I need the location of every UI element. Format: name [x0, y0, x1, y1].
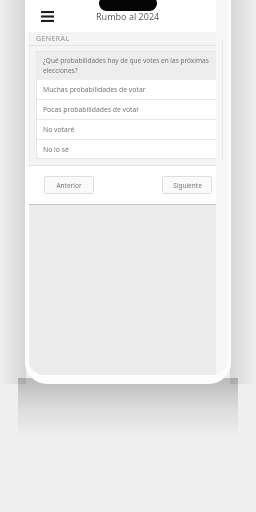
staticText: No votaré — [43, 125, 75, 134]
button[interactable]: Muchas probabilidades de votar — [36, 80, 218, 99]
staticText: Anterior — [56, 181, 82, 190]
button[interactable]: Pocas probabilidades de votar — [36, 100, 218, 119]
staticText: GENERAL — [36, 34, 70, 44]
staticText: Pocas probabilidades de votar — [43, 105, 140, 114]
staticText: Rumbo al 2024 — [96, 10, 160, 22]
button[interactable]: Abrir menú — [36, 5, 58, 27]
button[interactable]: No votaré — [36, 120, 218, 139]
button[interactable]: Siguiente — [162, 176, 212, 194]
button[interactable]: Anterior — [44, 176, 94, 194]
staticText: Muchas probabilidades de votar — [43, 85, 146, 94]
staticText: No lo sé — [43, 145, 69, 154]
staticText: Siguiente — [173, 181, 202, 190]
button[interactable]: No lo sé — [36, 140, 218, 159]
staticText: ¿Qué probabilidades hay de que votes en … — [43, 56, 211, 75]
